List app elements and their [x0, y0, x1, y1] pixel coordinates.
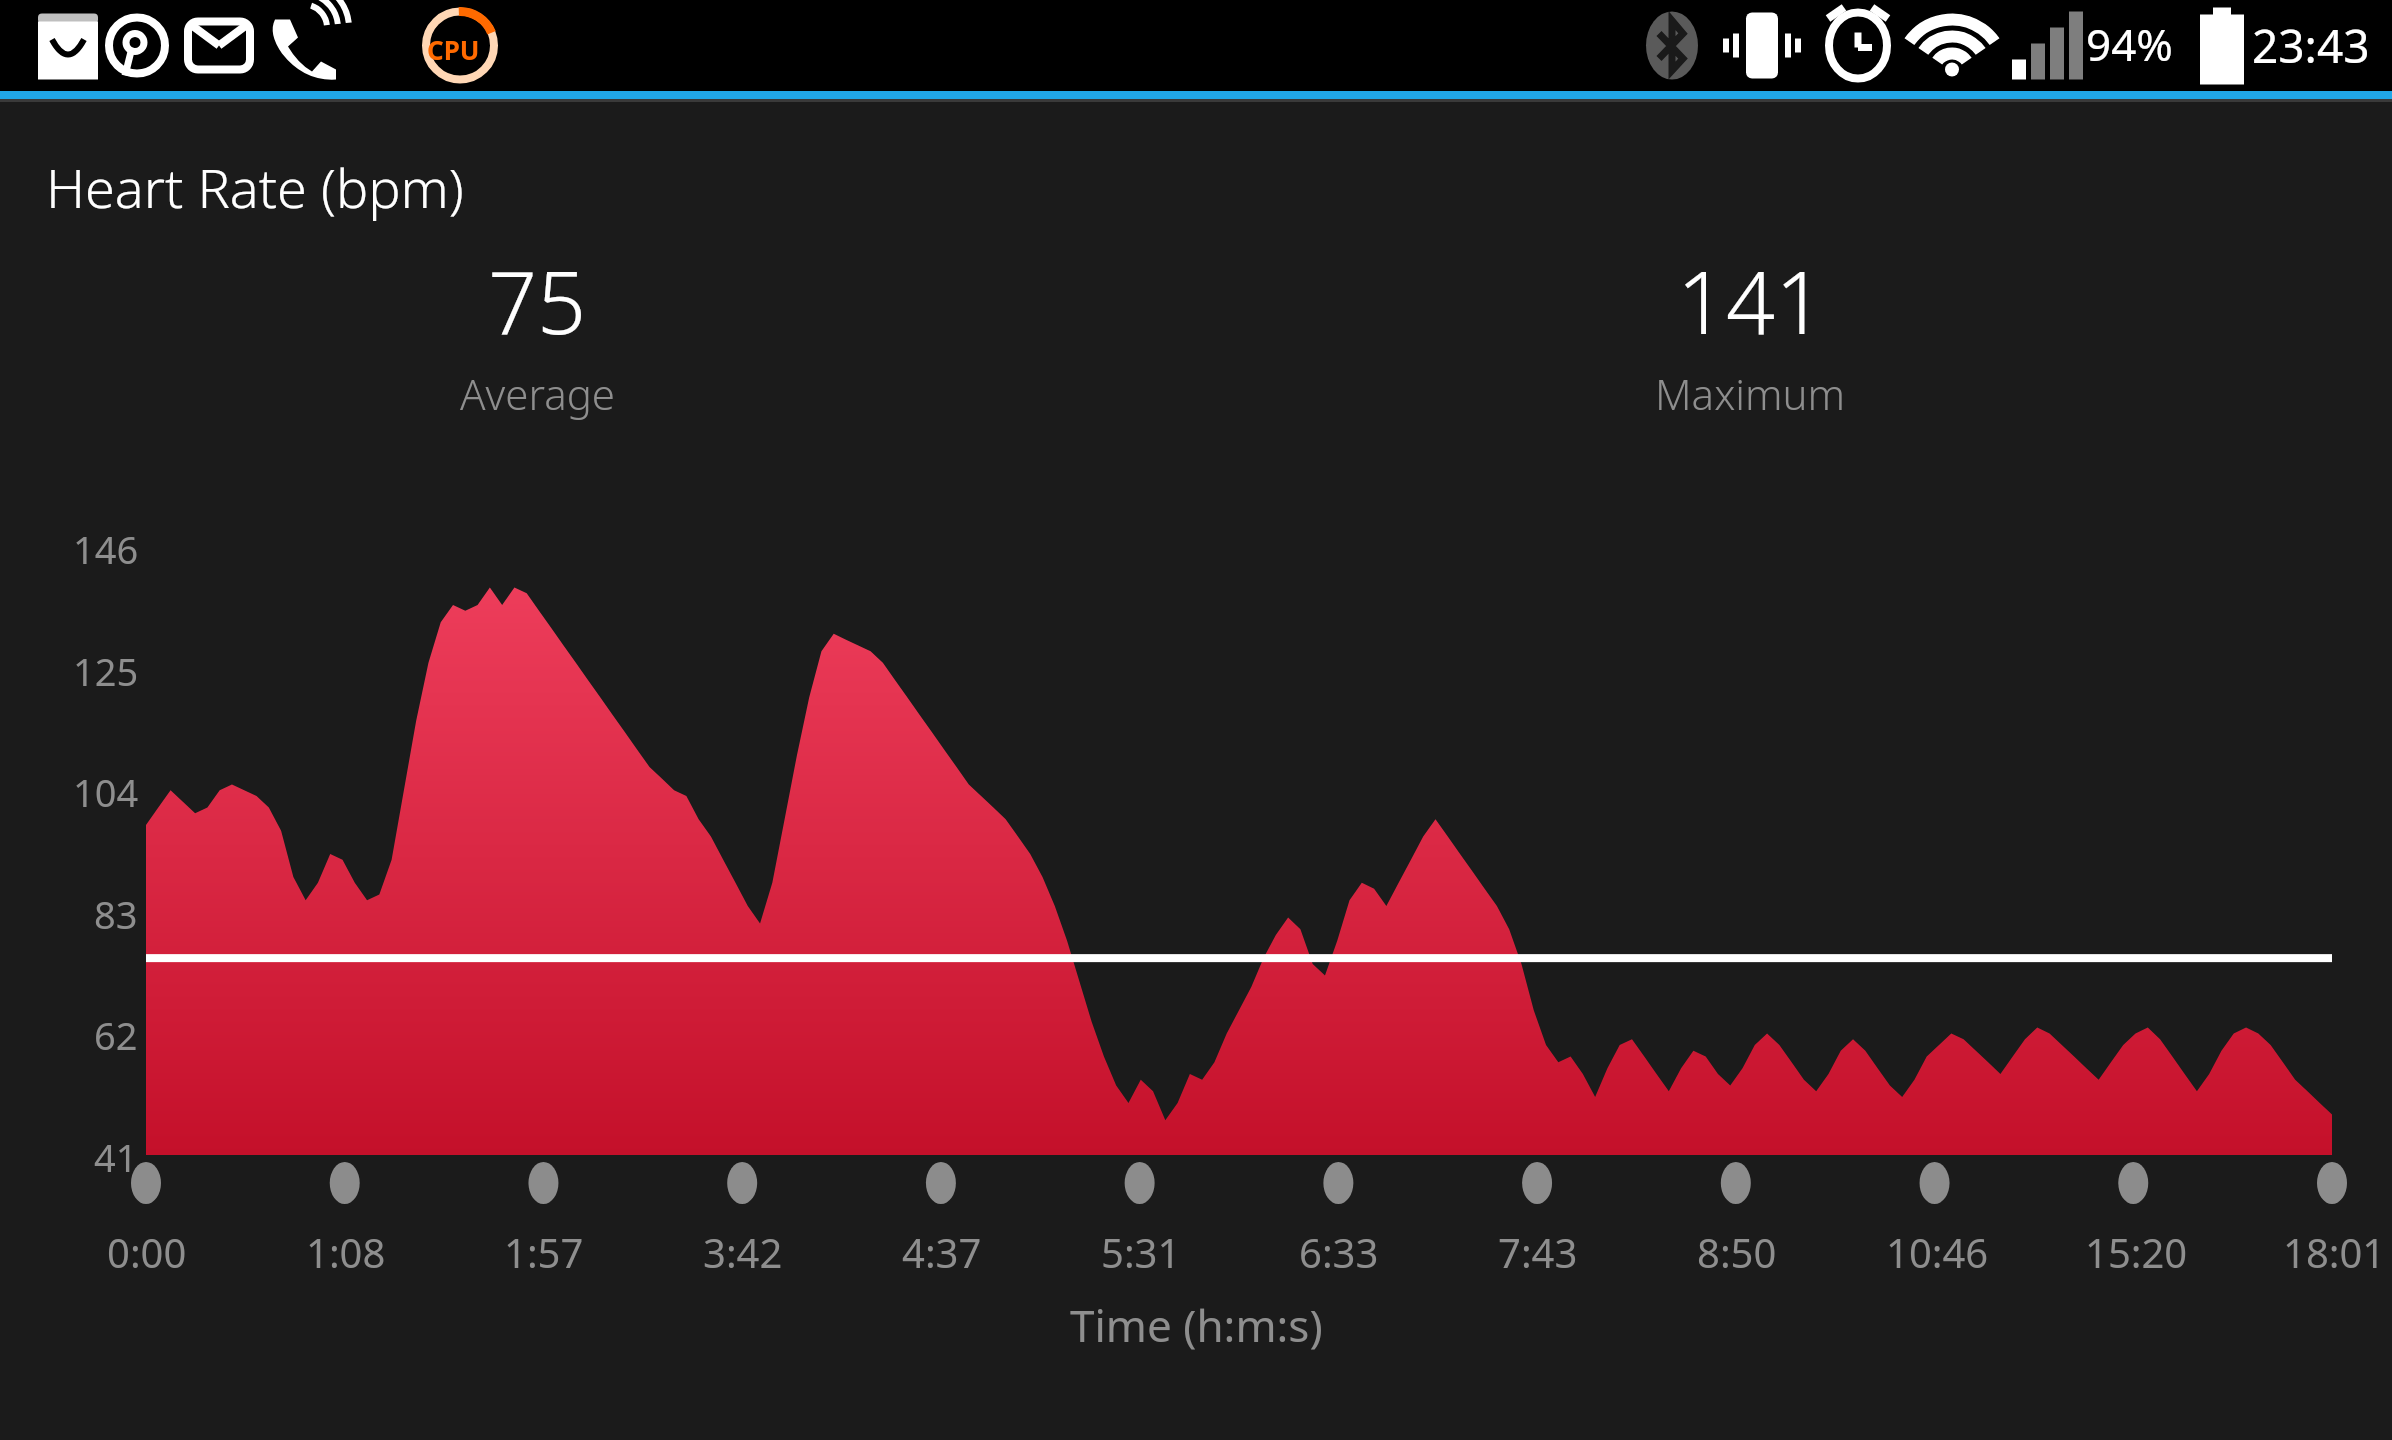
staticText: 3:42 — [703, 1225, 783, 1279]
staticText: 7:43 — [1498, 1225, 1578, 1279]
staticText: 1:57 — [504, 1225, 584, 1279]
staticText: 10:46 — [1886, 1225, 1989, 1279]
staticText: CPU — [427, 32, 480, 67]
button[interactable]: Heart rate chart — [0, 102, 2392, 1440]
staticText: 18:01 — [2283, 1225, 2386, 1279]
button[interactable]: 141 — [1655, 242, 1846, 422]
staticText: 94% — [2086, 14, 2173, 74]
staticText: 6:33 — [1299, 1225, 1379, 1279]
staticText: 5:31 — [1101, 1225, 1181, 1279]
staticText: Average — [460, 365, 615, 422]
staticText: 1:08 — [306, 1225, 386, 1279]
staticText: 4:37 — [902, 1225, 982, 1279]
staticText: 23:43 — [2252, 14, 2370, 77]
staticText: 141 — [1677, 242, 1825, 359]
staticText: 83 — [94, 888, 138, 940]
staticText: 125 — [73, 645, 139, 697]
button[interactable]: Heart Rate (bpm) — [46, 150, 464, 224]
staticText: 62 — [94, 1009, 138, 1061]
staticText: 0:00 — [107, 1225, 187, 1279]
staticText: Maximum — [1655, 365, 1846, 422]
staticText: 41 — [94, 1131, 138, 1183]
staticText: 8:50 — [1697, 1225, 1777, 1279]
button[interactable]: 75 — [460, 242, 615, 422]
staticText: 146 — [73, 523, 139, 575]
staticText: 15:20 — [2085, 1225, 2188, 1279]
staticText: 75 — [488, 242, 587, 359]
button[interactable]: Time (h:m:s) — [1070, 1295, 1323, 1355]
staticText: 104 — [73, 766, 139, 818]
